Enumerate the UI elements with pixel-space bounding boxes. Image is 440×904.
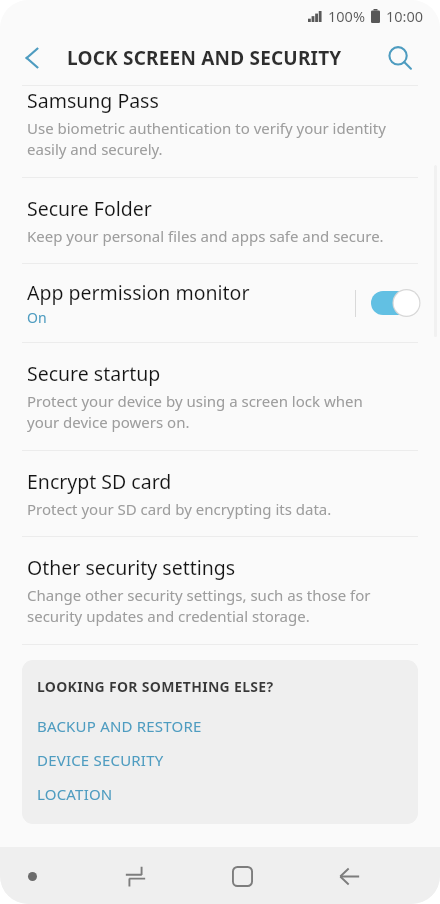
staticText: Protect your SD card by encrypting its d… [27,499,332,519]
staticText: Secure Folder [27,195,152,222]
button[interactable]: Recents [111,852,159,900]
button[interactable]: DEVICE SECURITY [37,743,403,777]
button[interactable]: Back [9,35,55,81]
staticText: LOCK SCREEN AND SECURITY [67,45,342,71]
staticText: 100% [328,6,365,26]
staticText: Secure startup [27,360,161,387]
button[interactable]: Search [377,35,423,81]
button[interactable]: App permission monitor, on [371,288,419,318]
button[interactable]: Samsung Pass [0,86,440,177]
button[interactable]: BACKUP AND RESTORE [37,709,403,743]
button[interactable]: Back [325,852,373,900]
button[interactable]: App permission monitor [0,264,440,342]
staticText: LOCATION [37,784,113,804]
staticText: BACKUP AND RESTORE [37,716,202,736]
staticText: Protect your device by using a screen lo… [27,391,392,433]
button[interactable]: Encrypt SD card [0,451,440,536]
button[interactable]: Secure startup [0,343,440,450]
button[interactable]: LOCATION [37,777,403,811]
staticText: On [27,308,47,327]
staticText: Use biometric authentication to verify y… [27,118,392,160]
button[interactable]: Home [218,852,266,900]
staticText: DEVICE SECURITY [37,750,164,770]
button[interactable]: Secure Folder [0,178,440,263]
staticText: Samsung Pass [27,87,159,114]
staticText: 10:00 [386,6,424,26]
staticText: App permission monitor [27,279,250,306]
staticText: LOOKING FOR SOMETHING ELSE? [37,677,274,696]
staticText: Other security settings [27,554,236,581]
button[interactable]: Other security settings [0,537,440,644]
staticText: Change other security settings, such as … [27,585,392,627]
staticText: Encrypt SD card [27,468,172,495]
staticText: Keep your personal files and apps safe a… [27,226,384,246]
